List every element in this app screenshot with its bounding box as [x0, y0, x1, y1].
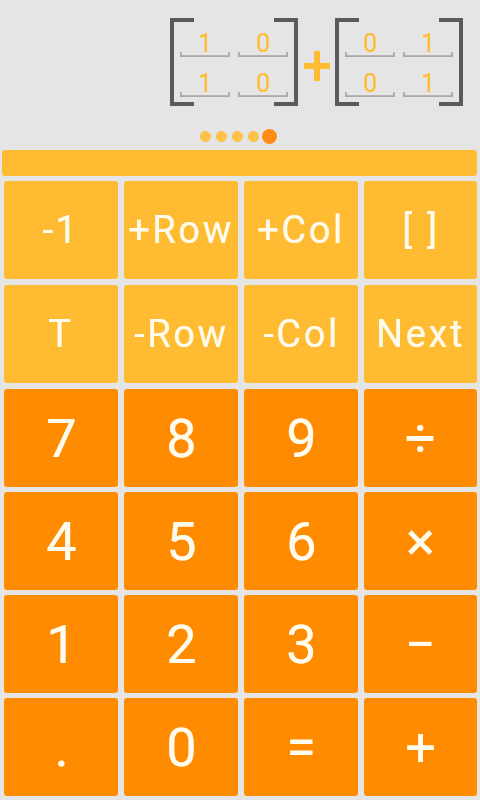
- staticText: Next: [376, 312, 465, 357]
- button[interactable]: ÷: [364, 389, 477, 487]
- staticText: -1: [42, 208, 80, 253]
- button[interactable]: Page: [216, 131, 227, 142]
- staticText: 0: [166, 716, 197, 779]
- button[interactable]: [ ]: [364, 181, 477, 279]
- button[interactable]: Page: [232, 131, 243, 142]
- staticText: −: [405, 613, 436, 676]
- staticText: T: [48, 312, 74, 357]
- staticText: 1: [198, 69, 213, 98]
- button[interactable]: 9: [244, 389, 358, 487]
- button[interactable]: 1: [180, 61, 230, 92]
- button[interactable]: Page: [248, 131, 259, 142]
- button[interactable]: Page: [200, 131, 211, 142]
- button[interactable]: 0: [238, 61, 288, 92]
- staticText: 9: [286, 407, 317, 470]
- button[interactable]: 4: [4, 492, 118, 590]
- staticText: .: [54, 716, 69, 779]
- button[interactable]: 1: [180, 21, 230, 52]
- button[interactable]: ×: [364, 492, 477, 590]
- button[interactable]: 5: [124, 492, 238, 590]
- button[interactable]: 0: [238, 21, 288, 52]
- staticText: 8: [166, 407, 197, 470]
- staticText: +: [405, 716, 436, 779]
- staticText: 0: [256, 69, 271, 98]
- button[interactable]: -Col: [244, 285, 358, 383]
- staticText: ÷: [405, 407, 436, 470]
- button[interactable]: +Col: [244, 181, 358, 279]
- button[interactable]: .: [4, 698, 118, 796]
- staticText: 0: [256, 29, 271, 58]
- button[interactable]: Current page: [262, 129, 277, 144]
- button[interactable]: -Row: [124, 285, 238, 383]
- staticText: 1: [421, 29, 436, 58]
- button[interactable]: 0: [345, 61, 395, 92]
- staticText: 1: [46, 613, 77, 676]
- button[interactable]: Expression area: [2, 150, 477, 176]
- button[interactable]: 0: [345, 21, 395, 52]
- staticText: 6: [286, 510, 317, 573]
- staticText: 0: [363, 69, 378, 98]
- button[interactable]: Next: [364, 285, 477, 383]
- staticText: -Col: [263, 312, 340, 357]
- button[interactable]: 3: [244, 595, 358, 693]
- button[interactable]: +: [364, 698, 477, 796]
- staticText: ×: [406, 510, 435, 573]
- button[interactable]: 6: [244, 492, 358, 590]
- staticText: 7: [46, 407, 77, 470]
- staticText: 5: [166, 510, 197, 573]
- button[interactable]: +Row: [124, 181, 238, 279]
- staticText: +Col: [257, 208, 345, 253]
- button[interactable]: 0: [124, 698, 238, 796]
- button[interactable]: 1: [4, 595, 118, 693]
- button[interactable]: T: [4, 285, 118, 383]
- staticText: 1: [198, 29, 213, 58]
- staticText: 3: [286, 613, 317, 676]
- button[interactable]: 1: [403, 61, 453, 92]
- staticText: 2: [166, 613, 197, 676]
- staticText: +Row: [128, 208, 234, 253]
- button[interactable]: 7: [4, 389, 118, 487]
- button[interactable]: -1: [4, 181, 118, 279]
- button[interactable]: −: [364, 595, 477, 693]
- staticText: 0: [363, 29, 378, 58]
- staticText: =: [286, 716, 316, 779]
- staticText: 1: [421, 69, 436, 98]
- staticText: -Row: [134, 312, 229, 357]
- button[interactable]: 2: [124, 595, 238, 693]
- staticText: 4: [46, 510, 77, 573]
- button[interactable]: 1: [403, 21, 453, 52]
- staticText: [ ]: [402, 208, 440, 253]
- button[interactable]: =: [244, 698, 358, 796]
- button[interactable]: 8: [124, 389, 238, 487]
